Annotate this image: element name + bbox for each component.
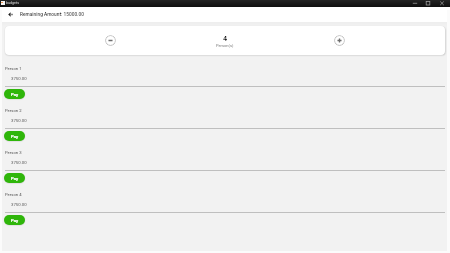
staticText: budgets <box>6 1 19 5</box>
staticText: Remaining Amount: 15000.00 <box>20 12 84 18</box>
staticText: Pay <box>11 176 18 181</box>
button[interactable]: Pay <box>4 215 25 225</box>
button[interactable]: Pay <box>4 131 25 141</box>
button[interactable]: Decrease persons <box>105 35 116 46</box>
staticText: 3750.00 <box>11 160 27 165</box>
staticText: Person 1 <box>5 66 22 71</box>
button[interactable]: Increase persons <box>334 35 345 46</box>
staticText: Person(s) <box>216 43 234 48</box>
staticText: Pay <box>11 92 18 97</box>
staticText: 3750.00 <box>11 118 27 123</box>
staticText: Person 3 <box>5 150 22 155</box>
button[interactable]: Back <box>0 7 20 22</box>
staticText: 3750.00 <box>11 202 27 207</box>
staticText: 4 <box>223 35 228 43</box>
staticText: 3750.00 <box>11 76 27 81</box>
staticText: Pay <box>11 134 18 139</box>
button[interactable]: Pay <box>4 89 25 99</box>
staticText: Person 2 <box>5 108 22 113</box>
button[interactable]: Pay <box>4 173 25 183</box>
staticText: Person 4 <box>5 192 22 197</box>
staticText: Pay <box>11 218 18 223</box>
